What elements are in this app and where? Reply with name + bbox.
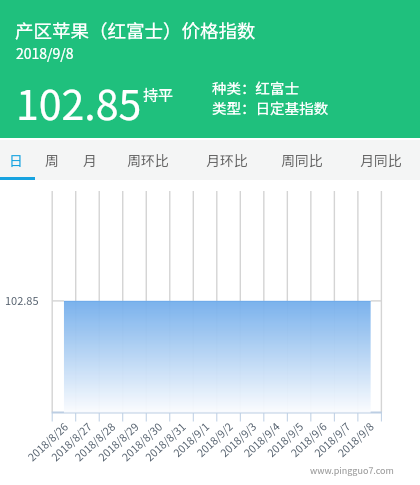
button[interactable]: 日 <box>0 141 34 179</box>
staticText: 102.85 <box>5 292 39 308</box>
staticText: 日 <box>9 150 23 170</box>
staticText: 种类：红富士 <box>212 77 299 98</box>
staticText: 月同比 <box>360 150 402 170</box>
staticText: 月环比 <box>206 150 248 170</box>
staticText: 2018/9/8 <box>16 43 74 63</box>
button[interactable]: 周 <box>34 141 70 179</box>
staticText: 月 <box>83 150 97 170</box>
staticText: 类型：日定基指数 <box>212 97 328 118</box>
staticText: www.pingguo7.com <box>310 464 394 477</box>
staticText: 周 <box>45 150 59 170</box>
other: Price index line chart <box>0 180 420 485</box>
button[interactable]: 月同比 <box>345 141 417 179</box>
staticText: 持平 <box>143 84 174 106</box>
button[interactable]: 月 <box>72 141 108 179</box>
staticText: 周环比 <box>127 150 169 170</box>
button[interactable]: 周环比 <box>112 141 184 179</box>
staticText: 产区苹果（红富士）价格指数 <box>15 17 256 44</box>
button[interactable]: 周同比 <box>266 141 338 179</box>
button[interactable]: 月环比 <box>191 141 263 179</box>
staticText: 周同比 <box>281 150 323 170</box>
button[interactable]: 产区苹果（红富士）价格指数 <box>0 0 420 138</box>
staticText: 102.85 <box>16 72 142 131</box>
